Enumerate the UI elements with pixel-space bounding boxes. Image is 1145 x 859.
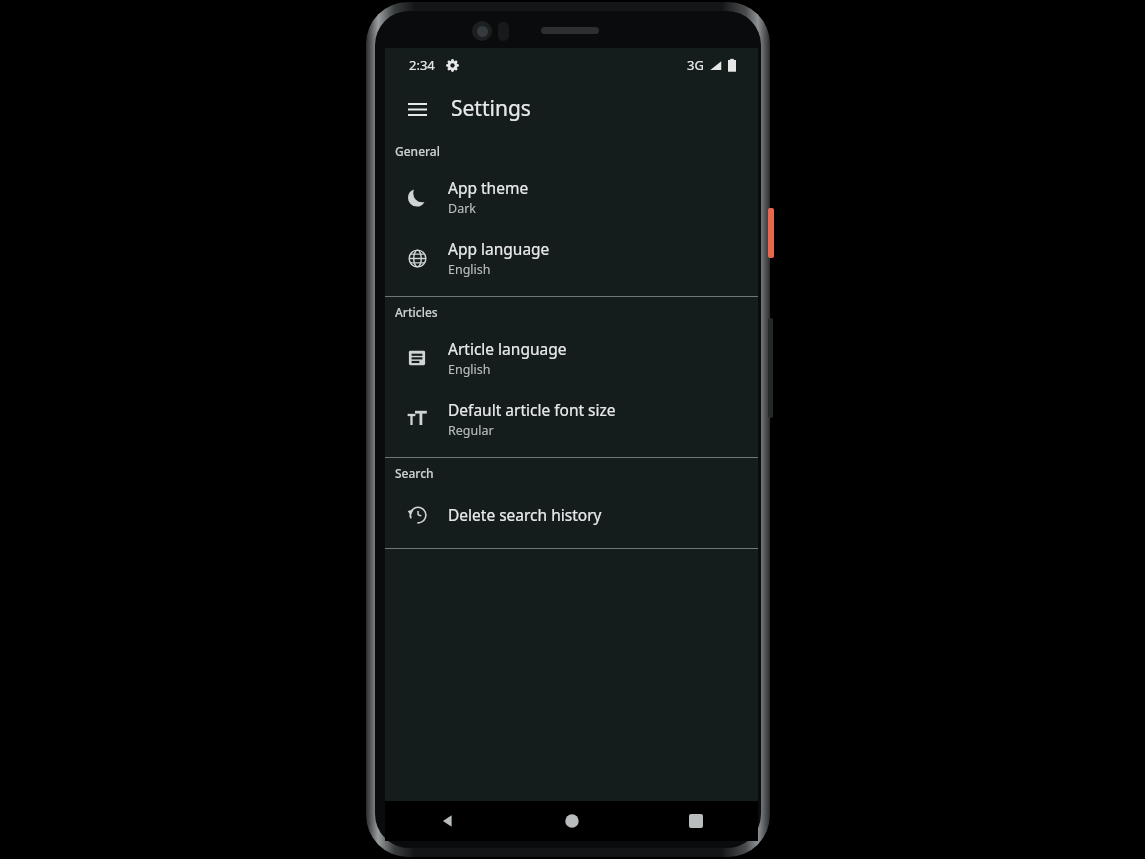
- staticText: Regular: [448, 422, 494, 439]
- staticText: English: [448, 361, 491, 378]
- button[interactable]: Default article font size: [385, 388, 758, 449]
- staticText: Article language: [448, 338, 567, 359]
- staticText: App language: [448, 238, 550, 259]
- staticText: General: [395, 143, 440, 159]
- staticText: English: [448, 261, 491, 278]
- staticText: Search: [395, 465, 434, 481]
- button[interactable]: Open navigation menu: [395, 87, 439, 131]
- staticText: Delete search history: [448, 504, 602, 525]
- staticText: Settings: [451, 94, 531, 123]
- staticText: 2:34: [409, 56, 435, 74]
- staticText: Dark: [448, 200, 476, 217]
- button[interactable]: Delete search history: [385, 488, 758, 540]
- staticText: 3G: [687, 56, 704, 74]
- staticText: App theme: [448, 177, 529, 198]
- button[interactable]: Article language: [385, 327, 758, 388]
- staticText: Articles: [395, 304, 438, 320]
- button[interactable]: App theme: [385, 166, 758, 227]
- button[interactable]: Back: [385, 801, 510, 841]
- staticText: Default article font size: [448, 399, 616, 420]
- button[interactable]: App language: [385, 227, 758, 288]
- button[interactable]: Recent apps: [634, 801, 758, 841]
- other: Power: [768, 208, 774, 258]
- button[interactable]: Home: [510, 801, 634, 841]
